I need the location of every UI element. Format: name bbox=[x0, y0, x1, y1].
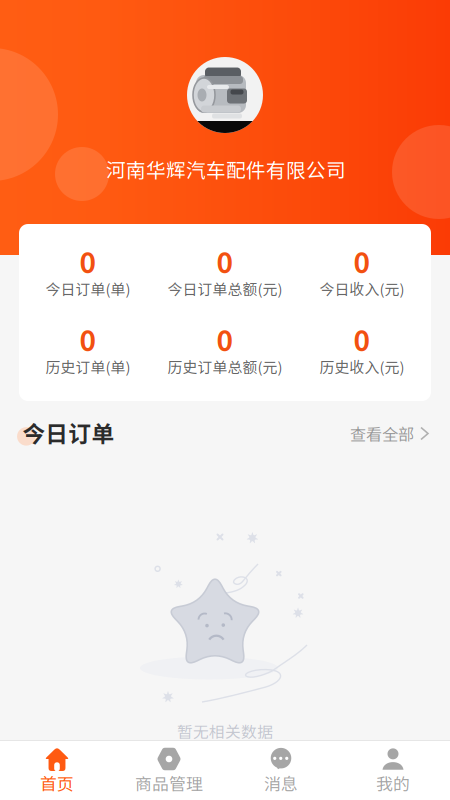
button[interactable]: 我的 bbox=[337, 741, 449, 800]
staticText: 消息 bbox=[264, 771, 298, 795]
staticText: 首页 bbox=[40, 771, 74, 795]
staticText: 0 bbox=[353, 241, 370, 281]
button[interactable]: 商品管理 bbox=[113, 741, 225, 800]
staticText: 0 bbox=[216, 319, 233, 359]
staticText: 今日订单 bbox=[23, 416, 115, 449]
staticText: 今日收入(元) bbox=[319, 278, 404, 299]
staticText: 0 bbox=[353, 319, 370, 359]
staticText: 0 bbox=[79, 319, 96, 359]
staticText: 今日订单总额(元) bbox=[167, 278, 282, 299]
staticText: 历史订单总额(元) bbox=[167, 356, 282, 377]
staticText: 商品管理 bbox=[135, 771, 203, 795]
staticText: 历史收入(元) bbox=[319, 356, 404, 377]
staticText: 0 bbox=[79, 241, 96, 281]
staticText: 今日订单(单) bbox=[45, 278, 130, 299]
staticText: 查看全部 bbox=[350, 422, 414, 445]
staticText: 河南华辉汽车配件有限公司 bbox=[106, 155, 346, 183]
staticText: 暂无相关数据 bbox=[177, 720, 273, 742]
staticText: 历史订单(单) bbox=[45, 356, 130, 377]
staticText: 0 bbox=[216, 241, 233, 281]
staticText: 我的 bbox=[376, 771, 410, 795]
button[interactable]: 首页 bbox=[1, 741, 113, 800]
button[interactable]: 查看全部 bbox=[350, 418, 428, 448]
button[interactable]: 消息 bbox=[225, 741, 337, 800]
